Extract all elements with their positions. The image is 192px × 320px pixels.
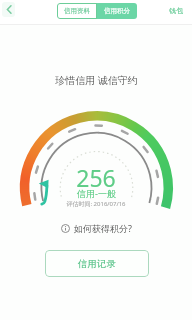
button[interactable]: 如何获得积分? [61, 221, 132, 235]
button[interactable]: 信用记录 [45, 250, 149, 277]
staticText: 信用资料 [64, 7, 90, 15]
staticText: 评估时间: 2016/07/16 [66, 200, 126, 208]
staticText: 钱包 [169, 6, 183, 15]
staticText: 256 [76, 162, 116, 190]
staticText: 珍惜信用 诚信守约 [55, 73, 138, 87]
staticText: 信用记录 [78, 258, 116, 270]
button[interactable]: 信用积分 [97, 3, 137, 19]
button[interactable] [2, 2, 15, 17]
button[interactable]: 钱包 [164, 0, 188, 21]
button[interactable]: 信用资料 [57, 3, 97, 19]
staticText: 如何获得积分? [74, 222, 132, 234]
staticText: 信用积分 [104, 7, 130, 15]
staticText: 信用-一般 [77, 187, 116, 199]
